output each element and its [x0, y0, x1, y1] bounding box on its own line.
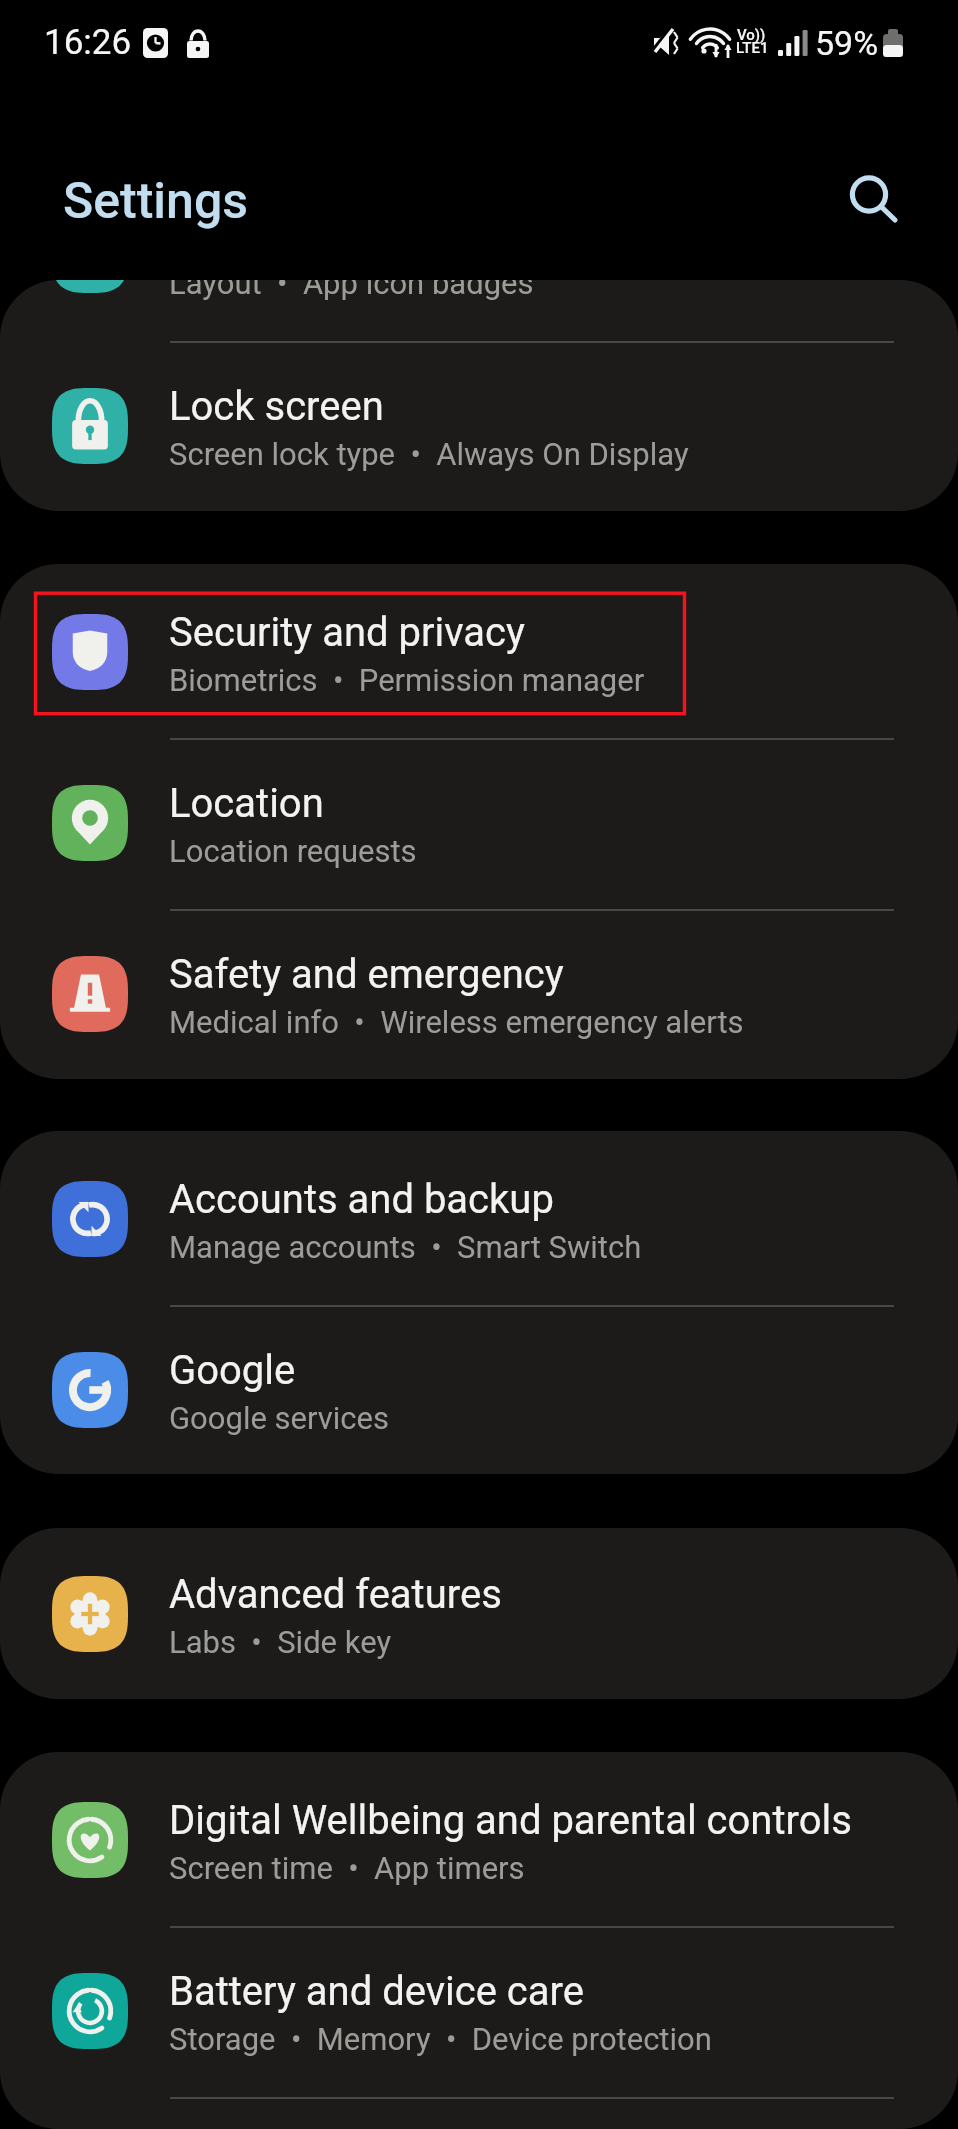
staticText: Layout • App icon badges: [169, 280, 534, 301]
button[interactable]: Location: [0, 737, 958, 908]
button[interactable]: Google: [0, 1304, 958, 1474]
staticText: Settings: [63, 172, 249, 231]
button[interactable]: Accounts and backup: [0, 1133, 958, 1304]
staticText: 16:26: [44, 22, 132, 63]
staticText: Google: [169, 1347, 296, 1394]
staticText: Biometrics • Permission manager: [169, 662, 645, 698]
staticText: LTE1: [736, 39, 769, 57]
staticText: Medical info • Wireless emergency alerts: [169, 1004, 744, 1040]
staticText: Digital Wellbeing and parental controls: [169, 1797, 852, 1844]
staticText: Storage • Memory • Device protection: [169, 2021, 712, 2057]
button[interactable]: Battery and device care: [0, 1925, 958, 2096]
staticText: Screen lock type • Always On Display: [169, 436, 689, 472]
staticText: Accounts and backup: [169, 1176, 554, 1223]
button[interactable]: Search: [814, 138, 924, 248]
staticText: Security and privacy: [169, 609, 525, 656]
staticText: Location: [169, 780, 324, 827]
staticText: 59%: [815, 23, 879, 63]
staticText: Battery and device care: [169, 1968, 584, 2015]
staticText: Google services: [169, 1400, 389, 1436]
staticText: Lock screen: [169, 383, 384, 430]
staticText: Safety and emergency: [169, 951, 564, 998]
button[interactable]: Lock screen: [0, 340, 958, 511]
staticText: Manage accounts • Smart Switch: [169, 1229, 642, 1265]
button[interactable]: Home screen: [0, 280, 958, 340]
staticText: Vo)): [737, 26, 766, 44]
button[interactable]: Advanced features: [0, 1528, 958, 1699]
staticText: Advanced features: [169, 1571, 502, 1618]
staticText: Labs • Side key: [169, 1624, 392, 1660]
button[interactable]: Safety and emergency: [0, 908, 958, 1079]
staticText: Location requests: [169, 833, 417, 869]
button[interactable]: Security and privacy: [0, 566, 958, 737]
staticText: Screen time • App timers: [169, 1850, 525, 1886]
button[interactable]: Digital Wellbeing and parental controls: [0, 1754, 958, 1925]
